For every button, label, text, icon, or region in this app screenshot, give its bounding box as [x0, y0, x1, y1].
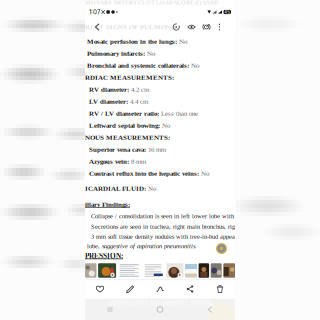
button[interactable]: Back: [185, 298, 235, 320]
staticText: RV / LV diameter ratio:: [89, 110, 159, 117]
staticText: 8 mm: [129, 158, 146, 165]
button[interactable]: Favourite: [85, 279, 115, 298]
staticText: Collapse / consolidation is seen in left…: [91, 212, 241, 220]
staticText: PRESSION:: [85, 252, 123, 260]
button[interactable]: Sign: [145, 279, 175, 298]
staticText: No: [177, 38, 187, 45]
button[interactable]: Recents: [85, 298, 135, 320]
staticText: illary Findings:: [85, 201, 130, 208]
staticText: No: [160, 122, 170, 129]
button[interactable]: Share: [175, 279, 205, 298]
staticText: No: [189, 62, 199, 69]
button[interactable]: Delete: [205, 279, 235, 298]
button[interactable]: More options: [213, 18, 226, 35]
staticText: Azygous vein:: [89, 158, 129, 165]
staticText: REST SIGNS OF PULMONA: [85, 23, 176, 31]
staticText: 1:07: [89, 8, 100, 16]
button[interactable]: Back: [90, 18, 105, 35]
staticText: No: [146, 185, 156, 192]
staticText: Mosaic perfusion in the lungs:: [87, 38, 177, 45]
staticText: Superior vena cava:: [89, 146, 146, 153]
button[interactable]: Preview: [184, 18, 199, 35]
button[interactable]: Edit: [115, 279, 145, 298]
staticText: Bronchial and systemic collaterals:: [87, 62, 189, 69]
staticText: NOUS MEASUREMENTS:: [85, 134, 170, 141]
staticText: destination healthcare: [117, 310, 203, 319]
staticText: No: [199, 170, 209, 177]
staticText: Secretions are seen in trachea, right ma…: [91, 223, 240, 230]
staticText: Leftward septal bowing:: [89, 122, 160, 129]
staticText: lobe,: [87, 242, 102, 250]
button[interactable]: Slideshow: [169, 18, 184, 35]
staticText: suggestive of aspiration pneumonitis.: [102, 242, 197, 250]
button[interactable]: Focus: [199, 18, 214, 35]
staticText: No: [145, 50, 155, 57]
staticText: 3 mm soft tissue density nodules with tr…: [91, 233, 237, 240]
staticText: RV diameter:: [89, 86, 129, 93]
staticText: 4.4 cm: [128, 98, 148, 105]
staticText: RDIAC MEASUREMENTS:: [85, 74, 174, 81]
staticText: 16 mm: [146, 146, 166, 153]
staticText: 4.2 cm: [129, 86, 149, 93]
staticText: Contrast reflux into the hepatic veins:: [89, 170, 199, 177]
staticText: MONARY ARTERY CLOT LOAD SCORE (QANAD: [85, 0, 218, 6]
staticText: Less than one: [159, 110, 198, 117]
staticText: Welcome to world class: [107, 297, 212, 309]
staticText: 45: [224, 9, 230, 15]
button[interactable]: Home: [135, 298, 185, 320]
staticText: LV diameter:: [89, 98, 128, 105]
staticText: Pulmonary infarcts:: [87, 50, 145, 57]
staticText: ICARDIAL FLUID:: [85, 185, 146, 192]
